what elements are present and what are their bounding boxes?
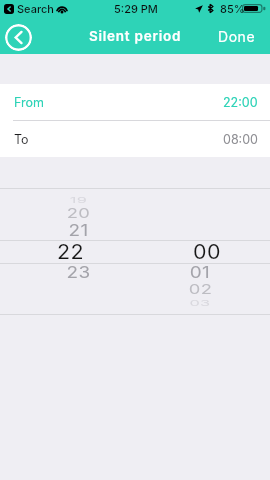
staticText: Search (17, 2, 54, 15)
staticText: 03 (189, 298, 211, 308)
staticText: 02 (189, 281, 212, 297)
button[interactable]: Done (205, 21, 270, 52)
staticText: 08:00 (223, 132, 258, 147)
staticText: 19 (70, 195, 87, 205)
staticText: 22 (57, 240, 84, 264)
staticText: 00 (193, 240, 221, 264)
button[interactable]: Back (5, 24, 32, 51)
staticText: 01 (189, 262, 211, 282)
staticText: 22:00 (223, 95, 258, 110)
button[interactable]: From (0, 84, 270, 121)
button[interactable]: Back to Search (4, 4, 14, 14)
button[interactable]: 19 (0, 188, 270, 315)
staticText: 85% (220, 2, 245, 15)
staticText: To (14, 132, 29, 147)
button[interactable]: To (0, 121, 270, 157)
staticText: 5:29 PM (114, 2, 158, 15)
staticText: 20 (67, 205, 90, 221)
staticText: 23 (66, 262, 91, 282)
staticText: Silent period (89, 28, 182, 44)
staticText: Done (218, 28, 256, 45)
staticText: From (14, 95, 44, 110)
staticText: 21 (68, 220, 89, 240)
